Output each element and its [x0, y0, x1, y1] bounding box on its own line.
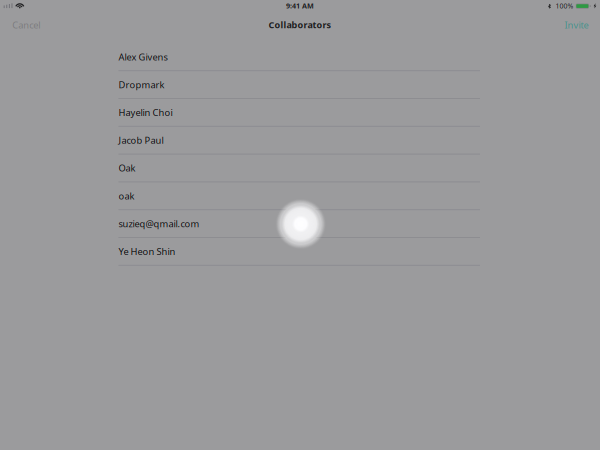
staticText: Collaborators: [268, 19, 331, 31]
staticText: oak: [118, 189, 134, 202]
staticText: Ye Heon Shin: [118, 245, 175, 258]
button[interactable]: Alex Givens: [118, 43, 480, 71]
button[interactable]: Invite: [556, 13, 600, 36]
staticText: Hayelin Choi: [118, 106, 172, 119]
button[interactable]: oak: [118, 182, 480, 210]
button[interactable]: Jacob Paul: [118, 127, 480, 155]
staticText: Alex Givens: [118, 50, 167, 63]
staticText: Dropmark: [118, 78, 164, 91]
staticText: Cancel: [12, 18, 40, 31]
staticText: Invite: [564, 18, 588, 31]
staticText: Oak: [118, 162, 135, 174]
button[interactable]: Oak: [118, 155, 480, 182]
staticText: 100%: [555, 1, 573, 10]
staticText: 9:41 AM: [286, 1, 314, 11]
button[interactable]: Dropmark: [118, 71, 480, 99]
button[interactable]: Cancel: [0, 13, 48, 36]
staticText: suzieq@qmail.com: [118, 217, 199, 230]
button[interactable]: suzieq@qmail.com: [118, 210, 480, 238]
staticText: Jacob Paul: [118, 134, 163, 146]
button[interactable]: Hayelin Choi: [118, 99, 480, 127]
button[interactable]: Ye Heon Shin: [118, 238, 480, 266]
